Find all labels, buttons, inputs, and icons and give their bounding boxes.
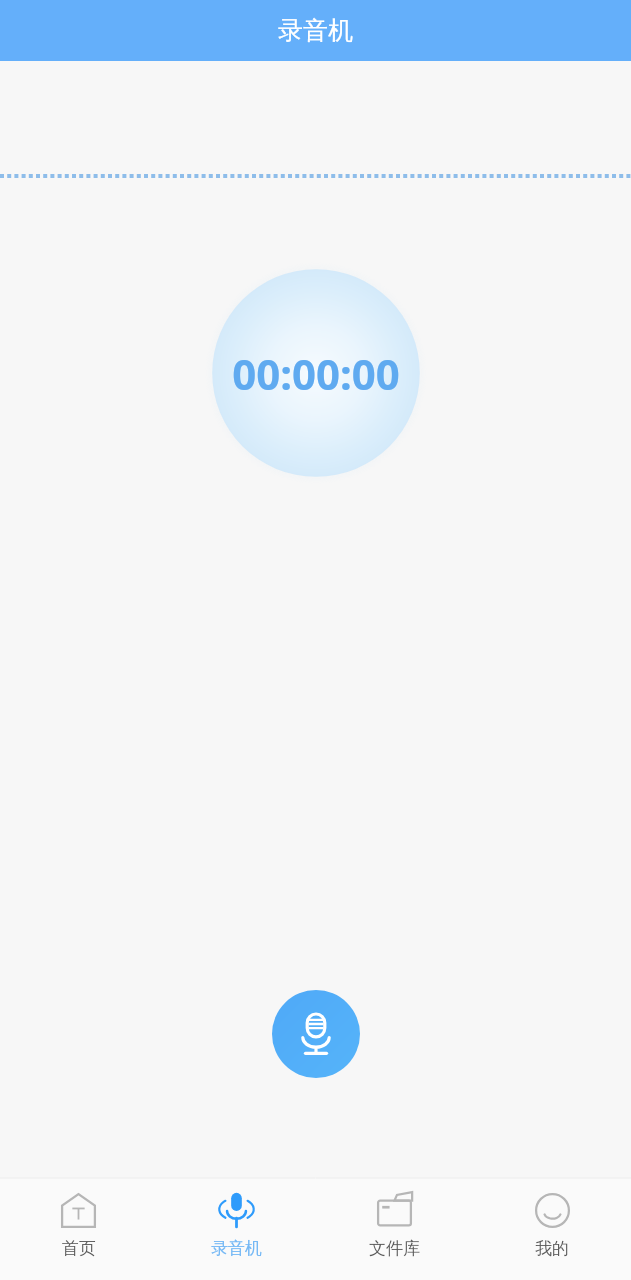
button[interactable]: 录音机 — [157, 1178, 315, 1280]
staticText: 我的 — [535, 1238, 569, 1259]
button[interactable]: 我的 — [473, 1178, 631, 1280]
staticText: 文件库 — [369, 1238, 420, 1259]
staticText: 00:00:00 — [232, 345, 400, 402]
button[interactable]: 首页 — [0, 1178, 157, 1280]
staticText: 首页 — [62, 1238, 96, 1259]
staticText: 录音机 — [211, 1238, 262, 1259]
button[interactable]: 开始录音 — [272, 990, 360, 1078]
button[interactable]: 文件库 — [315, 1178, 473, 1280]
staticText: 录音机 — [278, 15, 353, 46]
